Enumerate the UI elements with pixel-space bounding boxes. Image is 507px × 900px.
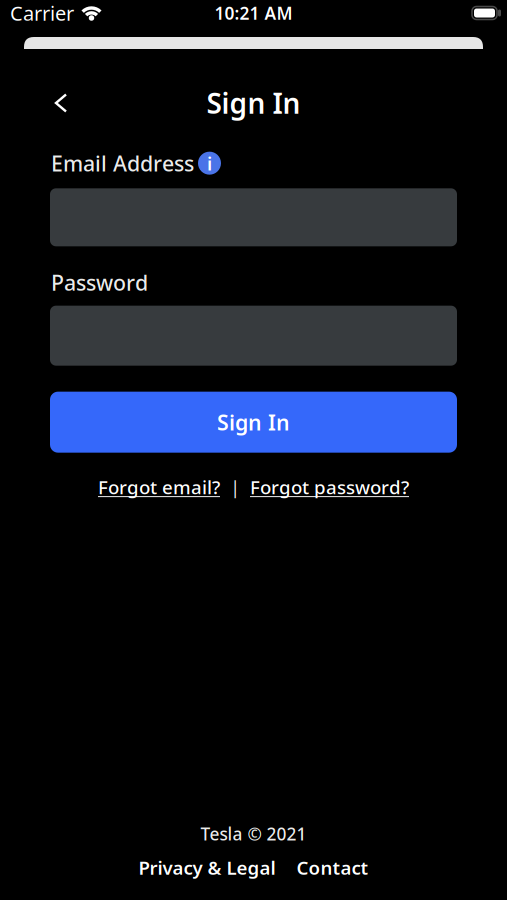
button[interactable]: Forgot email? [98,475,220,499]
staticText: Tesla © 2021 [200,822,306,845]
button[interactable]: Contact [296,855,368,880]
button[interactable]: Sign In [0,392,507,453]
staticText: Sign In [206,84,300,122]
button[interactable]: Privacy & Legal [138,855,275,880]
button[interactable]: Forgot password? [250,475,409,499]
staticText: Contact [296,855,368,880]
button[interactable]: Back [0,84,66,121]
button[interactable]: Email Address [0,188,507,246]
staticText: Email Address [51,149,194,177]
button[interactable]: Password [0,306,507,366]
staticText: Sign In [217,408,290,436]
staticText: | [230,475,240,499]
staticText: Forgot email? [98,475,220,499]
staticText: Privacy & Legal [138,855,275,880]
staticText: i [207,151,212,176]
button[interactable]: Email info [198,151,221,176]
staticText: Forgot password? [250,475,409,499]
staticText: 10:21 AM [214,1,292,24]
staticText: Password [51,268,148,297]
staticText: Carrier [10,0,74,26]
